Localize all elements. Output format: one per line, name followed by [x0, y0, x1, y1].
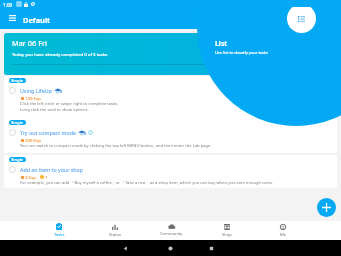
staticText: Single: [11, 157, 24, 162]
staticText: Mar 06 Fri: [12, 38, 47, 48]
staticText: For example, you can add 「Buy myself a c…: [20, 180, 274, 186]
button[interactable]: Tasks: [31, 221, 87, 240]
staticText: Use list to classify your tasks: [215, 50, 269, 55]
staticText: Tasks: [54, 232, 65, 238]
staticText: Single: [11, 78, 24, 83]
staticText: Single: [11, 120, 24, 125]
staticText: 1: [45, 174, 48, 180]
button[interactable]: Back: [123, 246, 128, 251]
staticText: Community: [160, 231, 183, 237]
button[interactable]: Status: [87, 221, 143, 240]
button[interactable]: Community: [143, 221, 199, 240]
staticText: Today you have already completed 0 of 3 …: [12, 51, 108, 57]
staticText: Shop: [222, 232, 232, 238]
button[interactable]: Home: [168, 246, 173, 251]
staticText: Add an item to your shop: [20, 166, 84, 173]
staticText: Me: [280, 232, 287, 238]
button[interactable]: Menu: [5, 12, 19, 24]
button[interactable]: Recents: [209, 246, 214, 251]
staticText: Click the left circle or swipe right to …: [20, 101, 119, 107]
staticText: Try out compact mode: [20, 129, 76, 136]
staticText: Using LifeUp: [20, 87, 52, 94]
button[interactable]: Mar 06 Fri: [4, 33, 337, 75]
staticText: 1:00: [3, 2, 13, 8]
button[interactable]: Add task: [317, 198, 336, 217]
staticText: Default: [23, 15, 51, 25]
button[interactable]: Single: [4, 76, 337, 118]
staticText: You can switch to compact mode by clicki…: [20, 143, 212, 149]
staticText: 130 Exp: [25, 95, 41, 101]
button[interactable]: Single: [4, 155, 337, 188]
staticText: List: [215, 39, 228, 48]
staticText: 200 Exp: [25, 137, 41, 143]
staticText: Long click the card to show options.: [20, 107, 89, 113]
button[interactable]: Me: [255, 221, 311, 240]
staticText: 0 Exp: [25, 174, 36, 180]
button[interactable]: Single: [4, 118, 337, 153]
staticText: Status: [109, 232, 121, 238]
button[interactable]: List: [287, 7, 316, 33]
button[interactable]: Shop: [199, 221, 255, 240]
